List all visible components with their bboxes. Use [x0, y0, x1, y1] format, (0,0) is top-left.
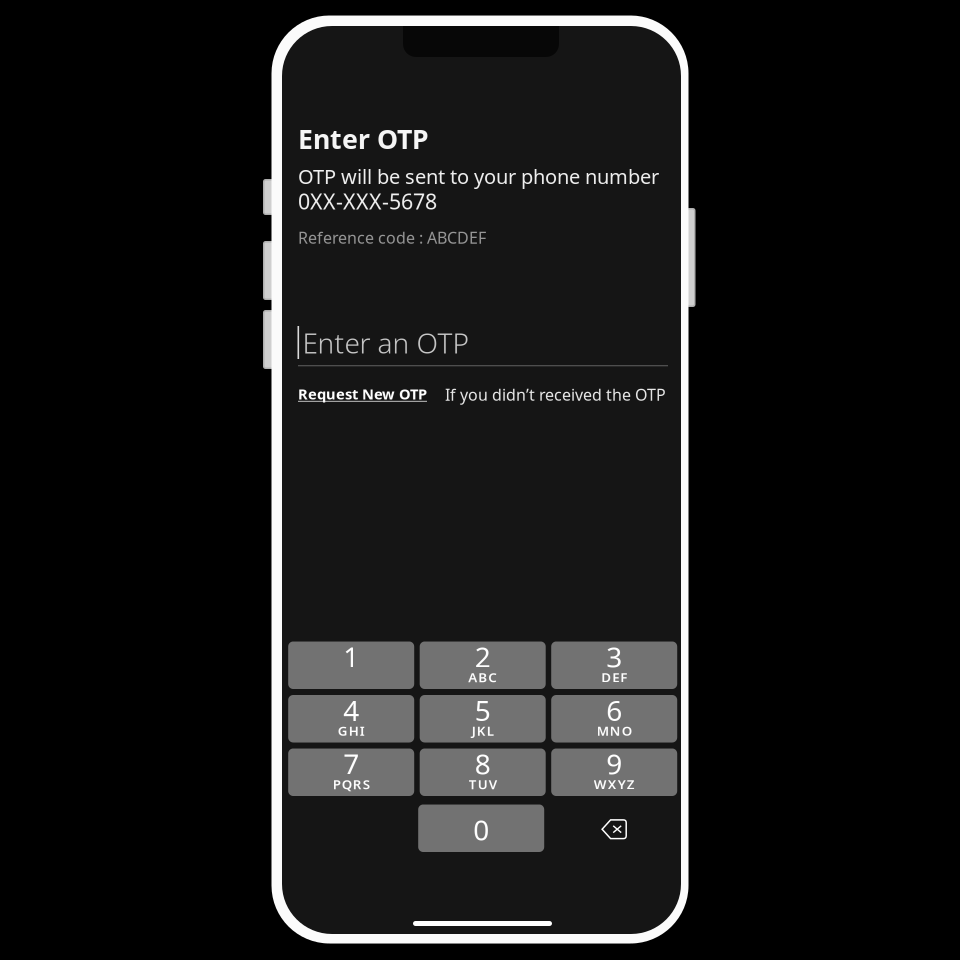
button[interactable]: 8 [420, 748, 546, 796]
staticText: Reference code : ABCDEF [298, 227, 486, 248]
button[interactable]: 3 [551, 641, 677, 689]
staticText: OTP will be sent to your phone number [298, 163, 659, 190]
button[interactable]: 5 [420, 695, 546, 742]
button[interactable]: 1 [288, 641, 414, 689]
staticText: D E F [601, 668, 627, 686]
staticText: 4 [343, 691, 359, 729]
button[interactable]: Request New OTP [298, 384, 427, 403]
staticText: J K L [472, 722, 494, 739]
staticText: Enter an OTP [302, 324, 468, 361]
staticText: If you didn’t received the OTP [445, 384, 666, 405]
button[interactable]: Enter an OTP [298, 325, 668, 370]
staticText: 5 [475, 691, 491, 729]
staticText: G H I [338, 722, 365, 739]
button[interactable]: 9 [551, 748, 677, 796]
button[interactable]: 2 [420, 641, 546, 689]
staticText: A B C [468, 668, 497, 686]
staticText: 1 [343, 638, 359, 675]
button[interactable]: Delete [551, 804, 677, 852]
staticText: W X Y Z [594, 775, 635, 793]
button[interactable]: 6 [551, 695, 677, 742]
staticText: Enter OTP [298, 121, 429, 156]
staticText: T U V [469, 775, 497, 793]
staticText: Request New OTP [298, 384, 427, 403]
staticText: 0XX-XXX-5678 [298, 187, 437, 215]
staticText: 3 [606, 638, 622, 675]
button[interactable]: 4 [288, 695, 414, 742]
staticText: M N O [597, 722, 632, 739]
staticText: 9 [606, 745, 622, 782]
button[interactable]: 7 [288, 748, 414, 796]
staticText: P Q R S [333, 775, 370, 793]
staticText: 2 [475, 638, 491, 675]
button[interactable]: 0 [418, 804, 544, 852]
staticText: 8 [475, 745, 491, 782]
staticText: 0 [473, 811, 489, 848]
staticText: 6 [606, 691, 622, 729]
staticText: 7 [343, 745, 359, 782]
